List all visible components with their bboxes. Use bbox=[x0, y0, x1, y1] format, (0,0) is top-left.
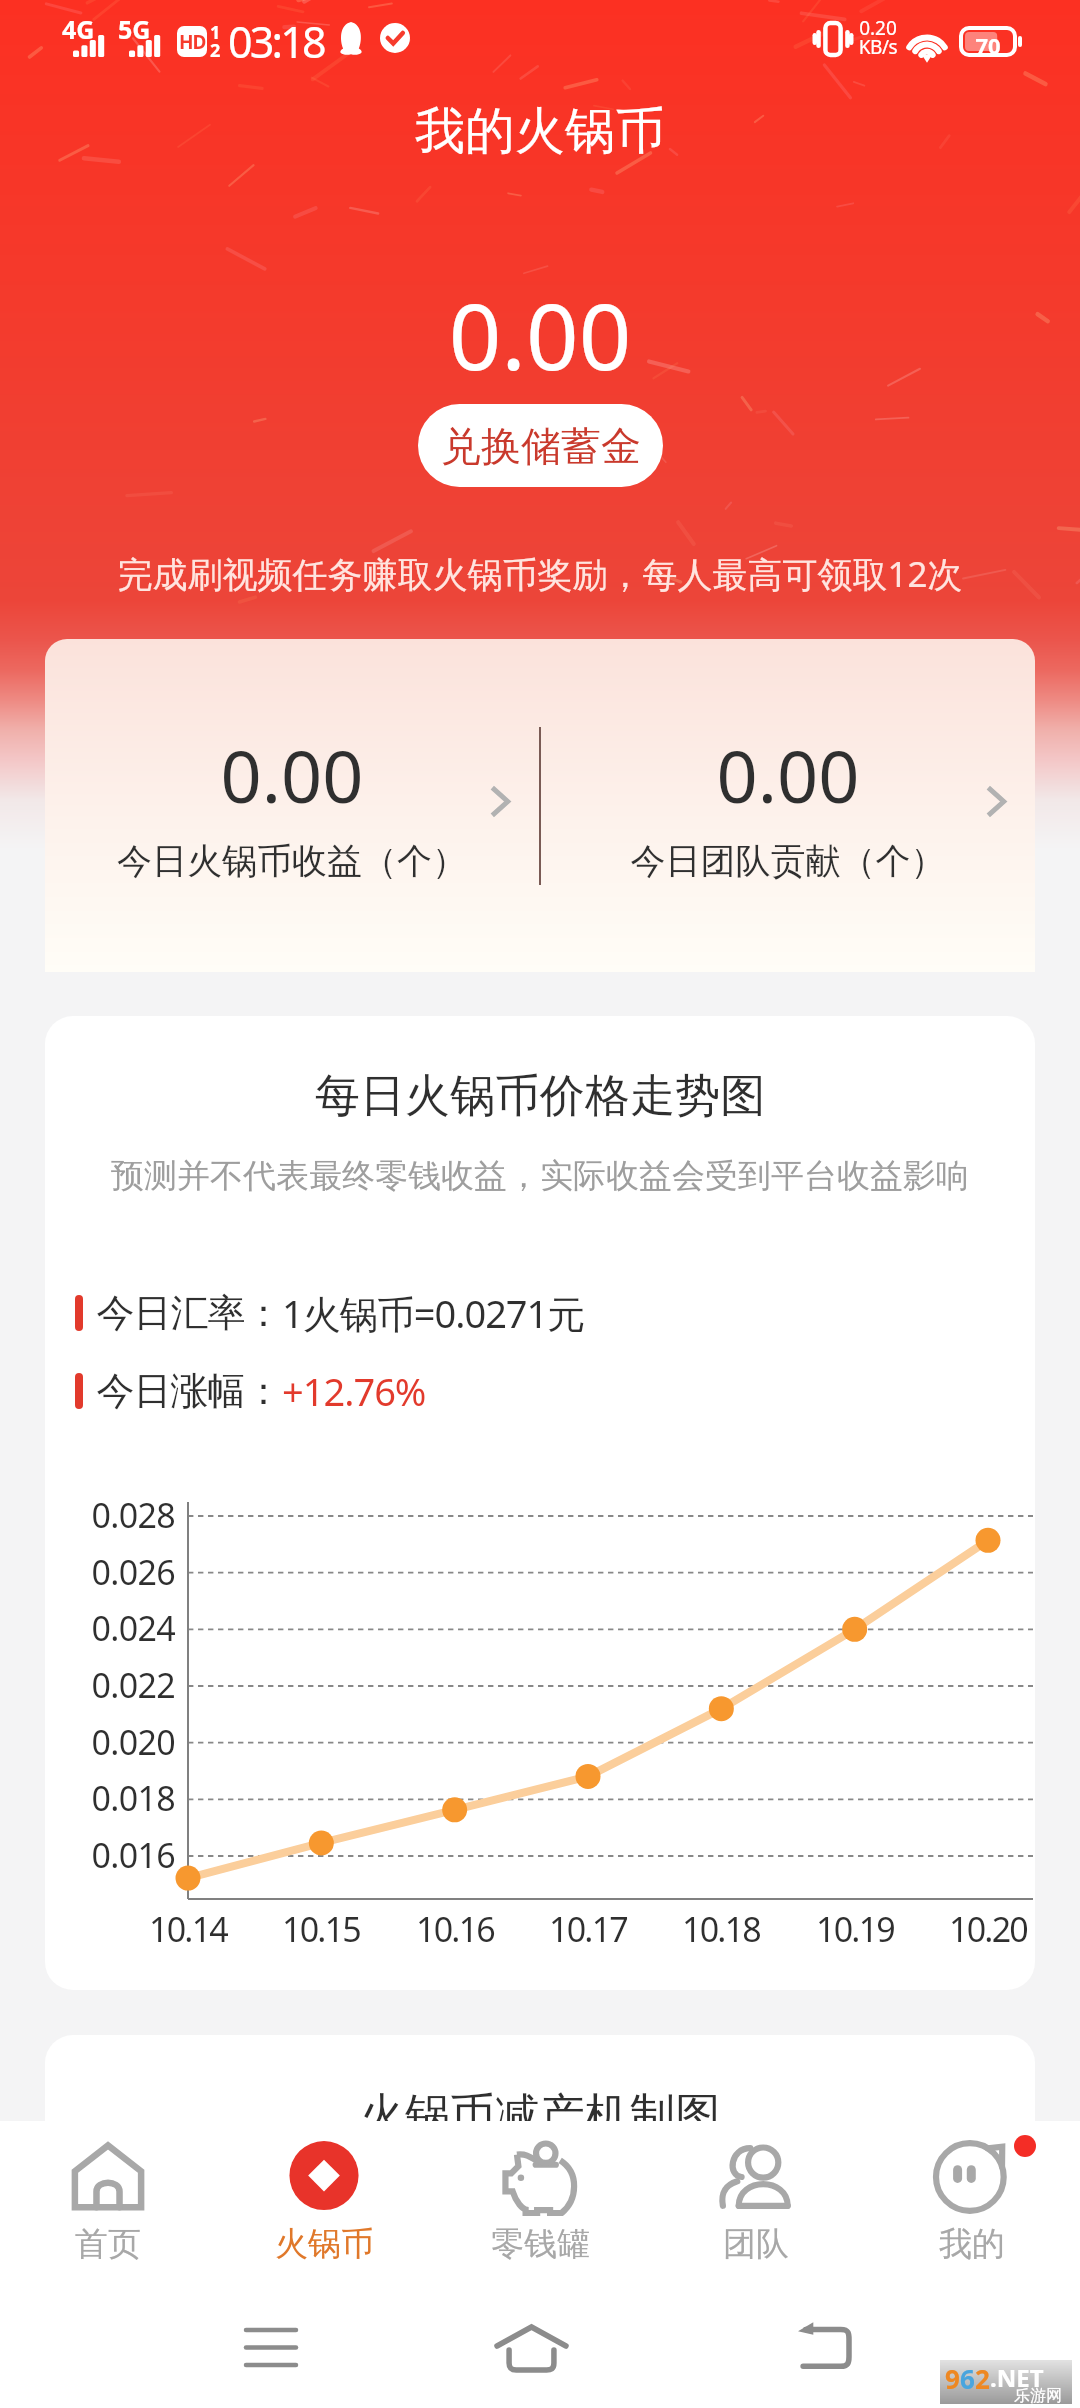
staticText: 今日火锅币收益（个） bbox=[45, 839, 539, 883]
staticText: 0.018 bbox=[45, 1775, 175, 1821]
button[interactable]: 火锅币 bbox=[216, 2121, 432, 2293]
staticText: 火锅币减产机制图 bbox=[45, 2087, 1035, 2144]
button[interactable]: 零钱罐 bbox=[432, 2121, 648, 2293]
staticText: 6 bbox=[960, 2361, 975, 2396]
staticText: 5G bbox=[118, 12, 151, 46]
staticText: 4G bbox=[62, 12, 95, 46]
staticText: 0.028 bbox=[45, 1492, 175, 1538]
other: 火锅币 bbox=[288, 2141, 360, 2213]
staticText: 10.15 bbox=[261, 1906, 381, 1952]
other: 团队 bbox=[720, 2141, 792, 2213]
staticText: 70 bbox=[959, 30, 1017, 60]
staticText: 火锅币 bbox=[275, 2223, 374, 2265]
button[interactable]: 兑换储蓄金 bbox=[418, 404, 663, 487]
button[interactable]: 0.00 bbox=[45, 639, 539, 972]
staticText: 0.026 bbox=[45, 1549, 175, 1595]
other: 首页 bbox=[72, 2141, 144, 2213]
staticText: 10.14 bbox=[128, 1906, 248, 1952]
staticText: 10.18 bbox=[661, 1906, 781, 1952]
staticText: 10.19 bbox=[795, 1906, 915, 1952]
staticText: 0.00 bbox=[45, 726, 539, 824]
staticText: 今日涨幅： bbox=[97, 1367, 282, 1415]
staticText: 零钱罐 bbox=[491, 2223, 590, 2265]
staticText: 0.022 bbox=[45, 1662, 175, 1708]
button[interactable]: Menu bbox=[221, 2297, 321, 2397]
staticText: 10.17 bbox=[528, 1906, 648, 1952]
staticText: 每日火锅币价格走势图 bbox=[45, 1068, 1035, 1125]
other: 我的 bbox=[936, 2141, 1008, 2213]
staticText: +12.76% bbox=[282, 1365, 426, 1417]
staticText: KB/s bbox=[855, 34, 901, 60]
staticText: 乐游网 bbox=[1014, 2386, 1062, 2406]
staticText: 首页 bbox=[75, 2223, 141, 2265]
staticText: 我的 bbox=[939, 2223, 1005, 2265]
button[interactable]: Home bbox=[481, 2297, 581, 2397]
staticText: 今日汇率： bbox=[97, 1289, 282, 1337]
staticText: 0.20 bbox=[855, 15, 901, 41]
staticText: .NET bbox=[990, 2361, 1044, 2394]
staticText: 兑换储蓄金 bbox=[441, 421, 641, 471]
staticText: 0.00 bbox=[0, 272, 1080, 397]
other: 零钱罐 bbox=[504, 2141, 576, 2213]
staticText: 2 bbox=[975, 2361, 990, 2396]
staticText: 完成刷视频任务赚取火锅币奖励，每人最高可领取12次 bbox=[0, 550, 1080, 598]
staticText: 2 bbox=[210, 38, 221, 63]
button[interactable]: 0.00 bbox=[541, 639, 1035, 972]
staticText: 团队 bbox=[723, 2223, 789, 2265]
staticText: 03:18 bbox=[228, 12, 324, 71]
staticText: 预测并不代表最终零钱收益，实际收益会受到平台收益影响 bbox=[45, 1155, 1035, 1197]
staticText: 0.024 bbox=[45, 1605, 175, 1651]
staticText: 0.016 bbox=[45, 1832, 175, 1878]
button[interactable]: 我的 bbox=[864, 2121, 1080, 2293]
staticText: 0.020 bbox=[45, 1719, 175, 1765]
staticText: 0.00 bbox=[541, 726, 1035, 824]
staticText: 今日团队贡献（个） bbox=[541, 839, 1035, 883]
button[interactable]: Back bbox=[773, 2297, 873, 2397]
button[interactable]: 首页 bbox=[0, 2121, 216, 2293]
staticText: HD bbox=[179, 29, 206, 55]
staticText: 我的火锅币 bbox=[0, 100, 1080, 163]
staticText: 10.20 bbox=[928, 1906, 1035, 1952]
staticText: 10.16 bbox=[395, 1906, 515, 1952]
button[interactable]: 团队 bbox=[648, 2121, 864, 2293]
staticText: 1 bbox=[210, 20, 221, 45]
staticText: 1火锅币=0.0271元 bbox=[282, 1287, 585, 1339]
staticText: 9 bbox=[945, 2361, 960, 2396]
